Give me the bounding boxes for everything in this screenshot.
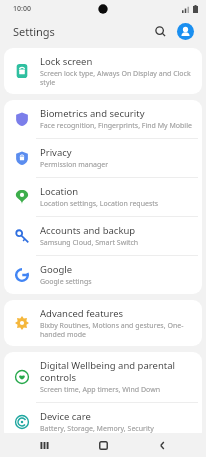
- staticText: Permission manager: [40, 160, 109, 170]
- staticText: Face recognition, Fingerprints, Find My …: [40, 121, 192, 131]
- staticText: Lock screen: [40, 55, 93, 68]
- staticText: Bixby Routines, Motions and gestures, On…: [40, 321, 192, 339]
- staticText: Advanced features: [40, 307, 124, 320]
- button[interactable]: Home: [88, 433, 118, 457]
- staticText: Privacy: [40, 146, 72, 159]
- staticText: Location: [40, 185, 79, 198]
- staticText: Screen lock type, Always On Display and …: [40, 69, 192, 87]
- staticText: Google: [40, 263, 73, 276]
- button[interactable]: Location: [4, 178, 202, 216]
- staticText: Accounts and backup: [40, 224, 136, 237]
- button[interactable]: Biometrics and security: [4, 100, 202, 138]
- staticText: Biometrics and security: [40, 107, 145, 120]
- staticText: 10:00: [13, 4, 31, 14]
- button[interactable]: Privacy: [4, 139, 202, 177]
- staticText: Screen time, App timers, Wind Down: [40, 385, 160, 395]
- staticText: Samsung Cloud, Smart Switch: [40, 238, 139, 248]
- staticText: Google settings: [40, 277, 92, 287]
- button[interactable]: Lock screen: [4, 48, 202, 94]
- staticText: Settings: [13, 24, 55, 39]
- staticText: Device care: [40, 410, 91, 423]
- button[interactable]: Search: [149, 20, 171, 42]
- staticText: Digital Wellbeing and parental controls: [40, 359, 192, 384]
- button[interactable]: Accounts and backup: [4, 217, 202, 255]
- button[interactable]: Back: [147, 433, 177, 457]
- button[interactable]: Google: [4, 256, 202, 294]
- staticText: Location settings, Location requests: [40, 199, 159, 209]
- button[interactable]: Advanced features: [4, 300, 202, 346]
- button[interactable]: Digital Wellbeing and parental controls: [4, 352, 202, 402]
- button[interactable]: Account: [174, 20, 196, 42]
- button[interactable]: Device care: [4, 403, 202, 441]
- staticText: Battery, Storage, Memory, Security: [40, 424, 154, 434]
- button[interactable]: Recents: [29, 433, 59, 457]
